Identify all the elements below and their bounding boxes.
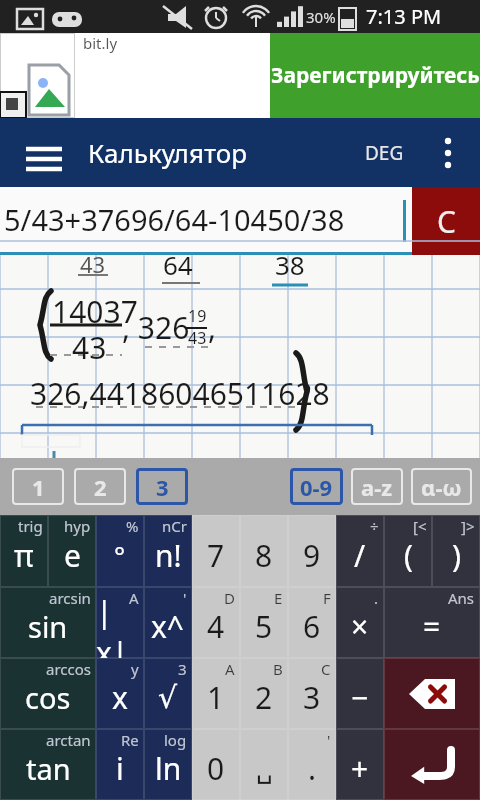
button[interactable]: 2 <box>84 468 116 505</box>
staticText: 43 <box>188 327 207 349</box>
staticText: hyp <box>64 516 91 536</box>
staticText: bit.ly <box>83 33 118 53</box>
staticText: , <box>208 307 217 348</box>
button[interactable]: 0 <box>192 729 240 800</box>
staticText: Ans <box>448 588 475 608</box>
button[interactable]: cos <box>0 658 96 729</box>
button[interactable]: . <box>288 729 336 800</box>
staticText: Калькулятор <box>88 135 247 170</box>
staticText: arctan <box>46 730 91 750</box>
button[interactable]: 1 <box>192 658 240 729</box>
staticText: 2 <box>255 677 273 718</box>
button[interactable]: 0-9 <box>300 468 333 505</box>
button[interactable]: C <box>412 187 480 255</box>
staticText: 38 <box>275 247 305 282</box>
staticText: = <box>423 606 441 647</box>
staticText: α-ω <box>421 472 462 502</box>
button[interactable]: × <box>336 587 384 658</box>
staticText: √ <box>158 680 178 715</box>
staticText: 5/43+37696/64-10450/38 <box>4 200 345 239</box>
staticText: x <box>112 677 128 718</box>
staticText: 4 <box>207 606 225 647</box>
button[interactable]: x <box>96 658 144 729</box>
button[interactable]: √ <box>144 658 192 729</box>
staticText: ° <box>114 538 126 573</box>
staticText: 7 <box>207 535 225 576</box>
staticText: % <box>126 516 139 536</box>
staticText: 7:13 PM <box>366 3 442 30</box>
staticText: a-z <box>361 472 393 502</box>
button[interactable]: sin <box>0 587 96 658</box>
button[interactable]: 6 <box>288 587 336 658</box>
staticText: ) <box>452 535 461 576</box>
staticText: ÷ <box>370 516 379 536</box>
button[interactable]: 2 <box>240 658 288 729</box>
staticText: ' <box>327 730 331 750</box>
button[interactable]: 1 <box>22 468 54 505</box>
button[interactable]: e <box>48 515 96 587</box>
button[interactable]: Menu <box>18 131 62 175</box>
button[interactable]: 5 <box>240 587 288 658</box>
button[interactable]: a-z <box>361 468 393 505</box>
button[interactable]: ° <box>96 515 144 587</box>
staticText: 19 <box>188 305 207 327</box>
staticText: 1 <box>207 677 225 718</box>
staticText: Зарегистрируйтесь <box>271 61 480 90</box>
staticText: C <box>321 659 331 679</box>
button[interactable]: |x| <box>96 587 144 658</box>
staticText: [< <box>413 516 427 536</box>
button[interactable]: ( <box>384 515 432 587</box>
button[interactable]: ln <box>144 729 192 800</box>
button[interactable]: + <box>336 729 384 800</box>
button[interactable]: i <box>96 729 144 800</box>
button[interactable]: tan <box>0 729 96 800</box>
staticText: 326,44186046511628 <box>30 373 330 414</box>
staticText: E <box>274 588 283 608</box>
staticText: × <box>351 606 369 647</box>
button[interactable]: 4 <box>192 587 240 658</box>
button[interactable]: More options <box>426 131 470 175</box>
staticText: / <box>354 535 366 576</box>
staticText: 3 <box>156 472 169 502</box>
staticText: 3 <box>178 659 187 679</box>
staticText: . <box>308 748 317 789</box>
staticText: y <box>131 659 139 679</box>
staticText: 2 <box>94 472 107 502</box>
button[interactable]: 7 <box>192 515 240 587</box>
button[interactable]: DEG <box>365 140 404 166</box>
staticText: cos <box>25 678 71 717</box>
button[interactable]: / <box>336 515 384 587</box>
staticText: e <box>64 535 81 576</box>
staticText: π <box>14 535 34 576</box>
button[interactable]: 9 <box>288 515 336 587</box>
button[interactable]: 8 <box>240 515 288 587</box>
button[interactable]: x^ <box>144 587 192 658</box>
staticText: , 326 <box>122 307 190 348</box>
staticText: 14037 <box>52 291 138 332</box>
staticText: 64 <box>163 247 193 282</box>
staticText: 8 <box>255 535 273 576</box>
staticText: A <box>129 588 139 608</box>
staticText: D <box>224 588 235 608</box>
staticText: trig <box>18 516 43 536</box>
button[interactable]: Зарегистрируйтесь <box>270 33 480 118</box>
button[interactable]: = <box>384 587 480 658</box>
staticText: − <box>351 677 369 718</box>
staticText: ␣ <box>256 754 273 784</box>
button[interactable]: n! <box>144 515 192 587</box>
button[interactable]: α-ω <box>421 468 462 505</box>
staticText: 43 <box>72 327 107 368</box>
button[interactable]: Enter <box>384 729 480 800</box>
button[interactable]: π <box>0 515 48 587</box>
button[interactable]: ␣ <box>240 729 288 800</box>
button[interactable]: ) <box>432 515 480 587</box>
staticText: . <box>374 588 379 608</box>
staticText: F <box>323 588 331 608</box>
staticText: B <box>273 659 283 679</box>
staticText: ln <box>155 748 182 789</box>
button[interactable]: Backspace <box>384 658 480 729</box>
button[interactable]: 3 <box>146 468 178 505</box>
button[interactable]: − <box>336 658 384 729</box>
button[interactable]: 3 <box>288 658 336 729</box>
staticText: arcsin <box>49 588 91 608</box>
